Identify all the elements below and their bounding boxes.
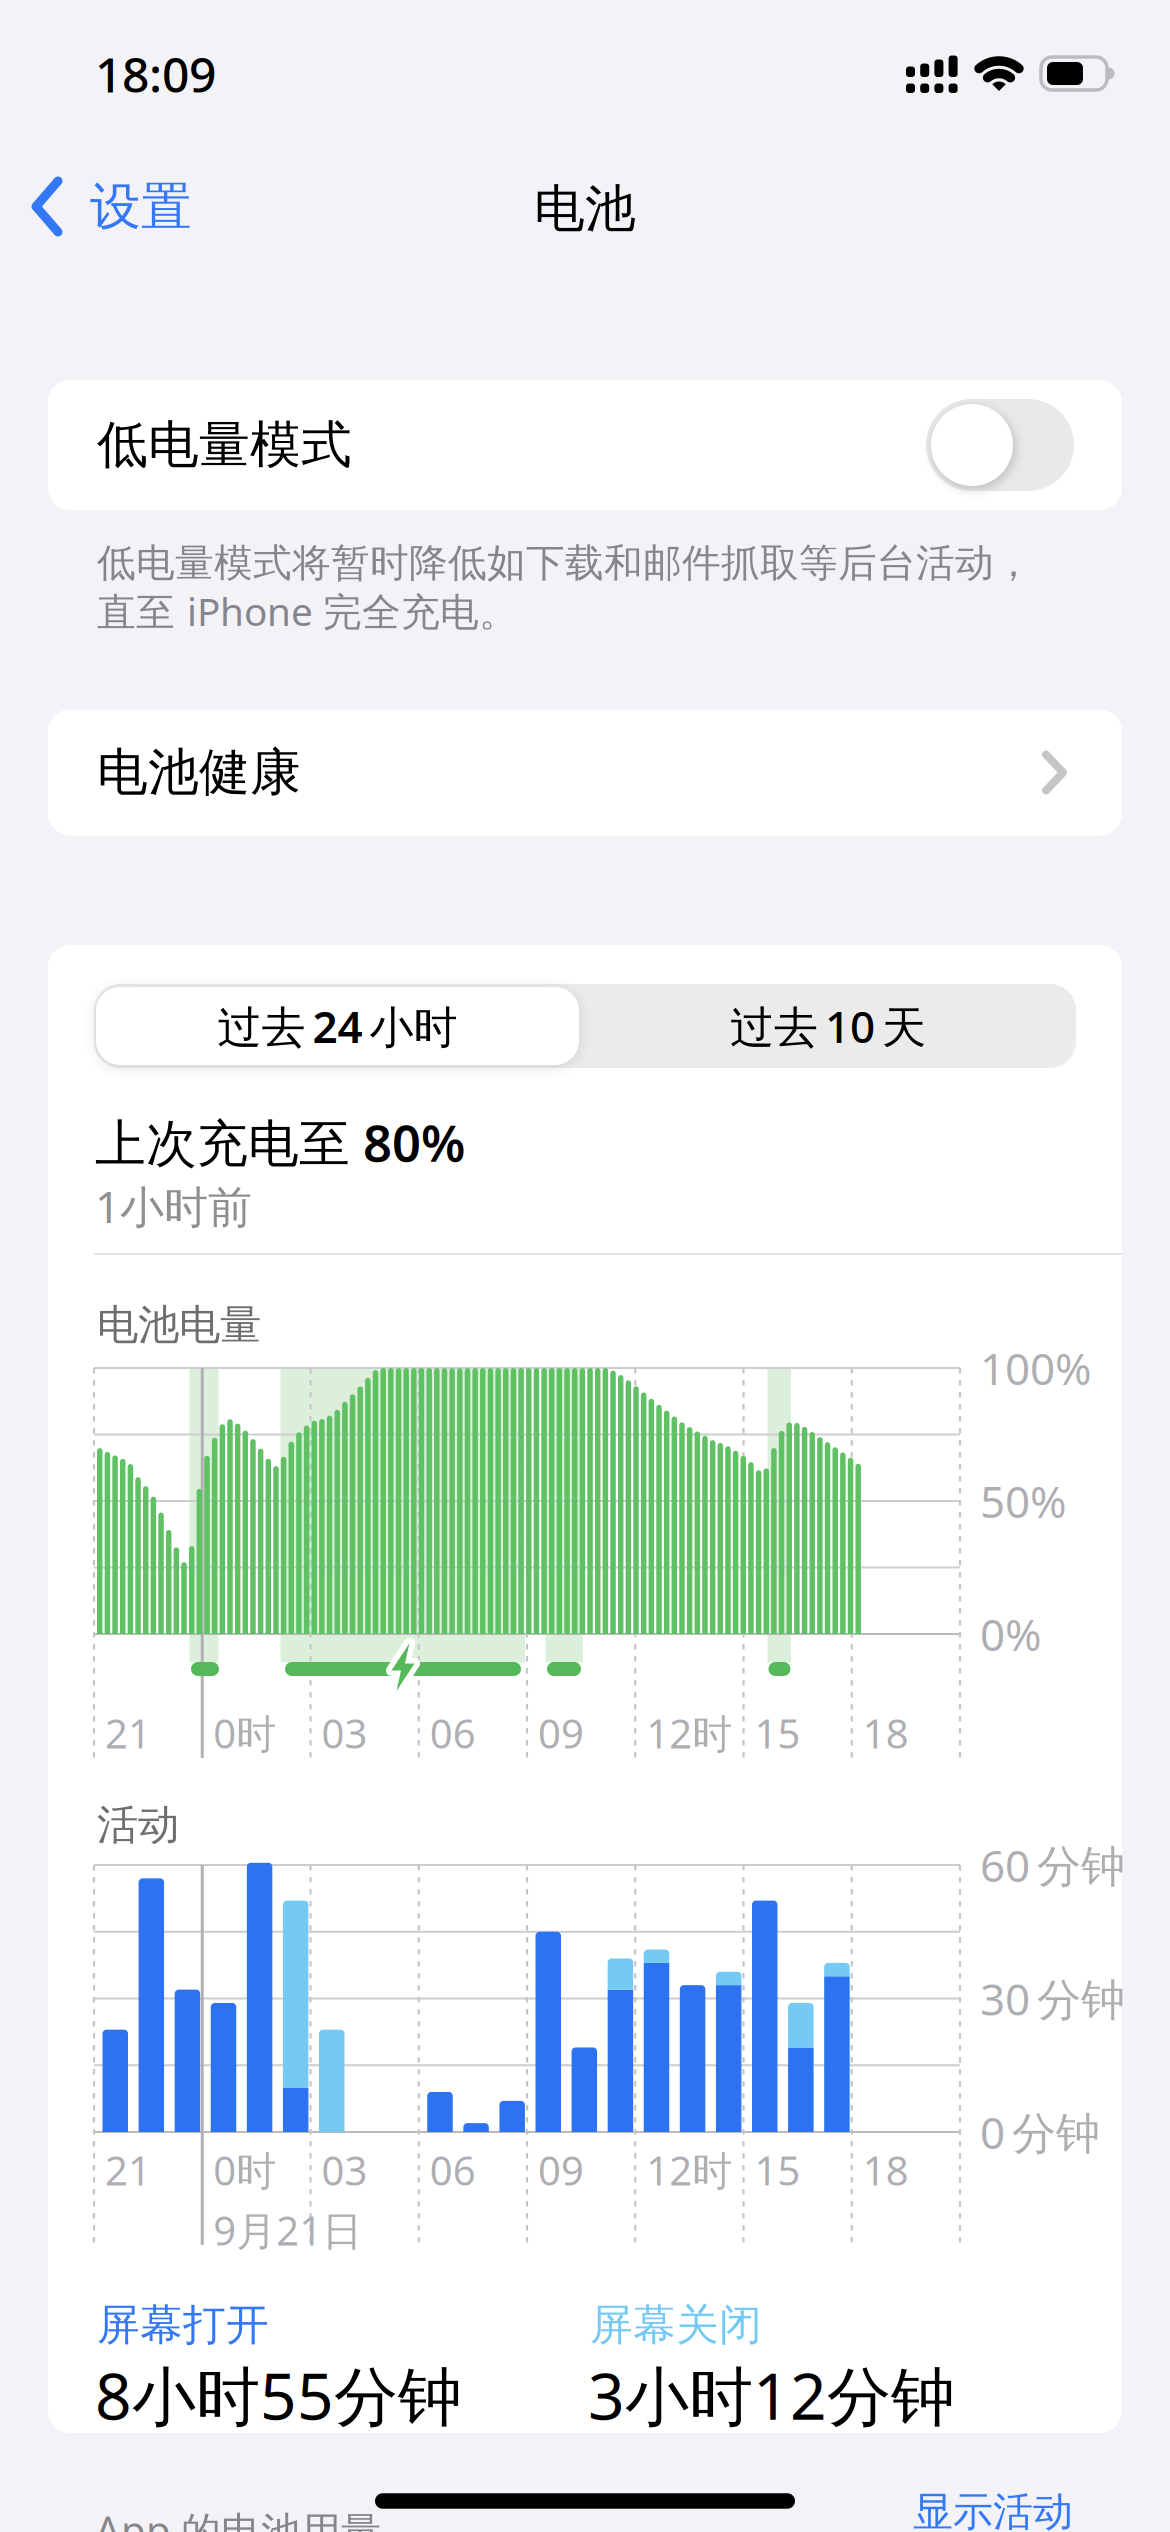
button[interactable] xyxy=(926,399,1074,491)
staticText: 18 xyxy=(863,1706,909,1759)
staticText: 15 xyxy=(754,1706,800,1759)
staticText: 50% xyxy=(980,1472,1067,1530)
staticText: 8小时55分钟 xyxy=(95,2352,462,2437)
staticText: App 的电池用量 xyxy=(95,2503,381,2532)
staticText: 电池电量 xyxy=(97,1300,261,1350)
button[interactable]: 过去 24 小时 xyxy=(96,987,579,1065)
staticText: 直至 iPhone 完全充电。 xyxy=(97,585,518,637)
staticText: 电池 xyxy=(534,178,636,240)
staticText: 60 分钟 xyxy=(980,1836,1125,1894)
staticText: 09 xyxy=(538,1706,584,1759)
staticText: 18:09 xyxy=(95,42,216,106)
staticText: 低电量模式 xyxy=(97,414,352,476)
button[interactable]: 电池健康 xyxy=(48,709,1122,835)
staticText: 0 分钟 xyxy=(980,2103,1100,2161)
staticText: 12时 xyxy=(646,1706,732,1759)
staticText: 06 xyxy=(430,1706,476,1759)
staticText: 显示活动 xyxy=(913,2487,1073,2532)
staticText: 活动 xyxy=(97,1800,179,1850)
staticText: 上次充电至 80% xyxy=(95,1108,465,1176)
staticText: 09 xyxy=(538,2143,584,2196)
staticText: 0时 xyxy=(213,1706,276,1759)
button[interactable]: 显示活动 xyxy=(883,2477,1103,2532)
button[interactable]: 设置 xyxy=(32,156,292,257)
staticText: 0% xyxy=(980,1605,1042,1663)
staticText: 18 xyxy=(863,2143,909,2196)
button[interactable]: 过去 10 天 xyxy=(588,987,1068,1065)
staticText: 21 xyxy=(105,2143,151,2196)
staticText: 12时 xyxy=(646,2143,732,2196)
staticText: 06 xyxy=(430,2143,476,2196)
staticText: 9月21日 xyxy=(213,2203,362,2256)
staticText: 0时 xyxy=(213,2143,276,2196)
staticText: 电池健康 xyxy=(97,741,301,804)
staticText: 30 分钟 xyxy=(980,1969,1125,2028)
staticText: 屏幕关闭 xyxy=(590,2299,762,2351)
staticText: 15 xyxy=(754,2143,800,2196)
staticText: 过去 24 小时 xyxy=(217,997,457,1055)
staticText: 1小时前 xyxy=(95,1177,252,1235)
staticText: 03 xyxy=(321,2143,367,2196)
staticText: 低电量模式将暂时降低如下载和邮件抓取等后台活动， xyxy=(97,539,1033,587)
staticText: 过去 10 天 xyxy=(730,997,926,1055)
staticText: 21 xyxy=(105,1706,151,1759)
staticText: 03 xyxy=(321,1706,367,1759)
staticText: 100% xyxy=(980,1339,1092,1397)
staticText: 3小时12分钟 xyxy=(588,2352,955,2437)
staticText: 设置 xyxy=(90,176,192,238)
staticText: 屏幕打开 xyxy=(97,2299,269,2351)
